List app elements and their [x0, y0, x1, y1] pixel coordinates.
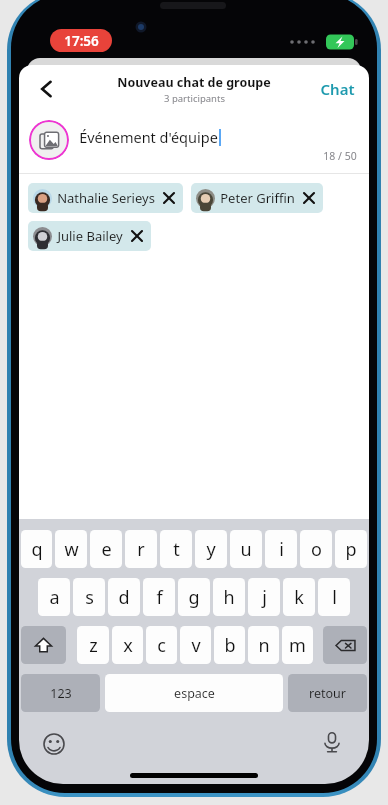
button[interactable]: Emoji: [41, 731, 67, 757]
button[interactable]: m: [282, 626, 313, 664]
staticText: l: [332, 585, 337, 610]
button[interactable]: o: [300, 530, 332, 568]
staticText: f: [156, 585, 163, 610]
staticText: p: [345, 537, 357, 562]
button[interactable]: c: [146, 626, 177, 664]
button[interactable]: v: [180, 626, 211, 664]
button[interactable]: Nathalie Serieys: [28, 183, 183, 213]
button[interactable]: Dictée: [319, 729, 345, 755]
staticText: 18 / 50: [323, 149, 357, 163]
button[interactable]: l: [318, 578, 350, 616]
button[interactable]: n: [248, 626, 279, 664]
staticText: u: [240, 537, 252, 562]
button[interactable]: Julie Bailey: [28, 221, 151, 251]
staticText: 17:56: [64, 32, 99, 50]
staticText: 3 participants: [164, 92, 225, 105]
button[interactable]: Supprimer: [323, 626, 367, 664]
staticText: Chat: [320, 79, 355, 99]
staticText: g: [188, 585, 200, 610]
button[interactable]: p: [335, 530, 367, 568]
staticText: Nouveau chat de groupe: [117, 74, 271, 91]
staticText: q: [31, 537, 43, 562]
staticText: z: [89, 633, 98, 658]
button[interactable]: espace: [105, 674, 283, 712]
staticText: i: [279, 537, 284, 562]
button[interactable]: Chat: [316, 73, 359, 105]
button[interactable]: 123: [21, 674, 100, 712]
staticText: espace: [174, 685, 215, 702]
button[interactable]: a: [38, 578, 70, 616]
button[interactable]: t: [160, 530, 192, 568]
staticText: d: [118, 585, 130, 610]
other: Supprimer Nathalie Serieys: [162, 191, 176, 205]
staticText: Peter Griffin: [220, 189, 295, 207]
button[interactable]: w: [55, 530, 87, 568]
staticText: s: [85, 585, 94, 610]
button[interactable]: Ajouter une photo: [29, 120, 69, 160]
staticText: e: [101, 537, 112, 562]
staticText: h: [223, 585, 235, 610]
other: Supprimer Peter Griffin: [302, 191, 316, 205]
button[interactable]: Majuscule: [21, 626, 66, 664]
button[interactable]: y: [195, 530, 227, 568]
button[interactable]: j: [248, 578, 280, 616]
button[interactable]: retour: [288, 674, 367, 712]
button[interactable]: r: [125, 530, 157, 568]
staticText: n: [258, 633, 270, 658]
button[interactable]: g: [178, 578, 210, 616]
staticText: y: [206, 537, 216, 562]
button[interactable]: s: [73, 578, 105, 616]
button[interactable]: b: [214, 626, 245, 664]
button[interactable]: f: [143, 578, 175, 616]
button[interactable]: Peter Griffin: [191, 183, 323, 213]
other: Supprimer Julie Bailey: [130, 229, 144, 243]
staticText: Événement d'équipe: [79, 127, 218, 147]
staticText: j: [262, 585, 267, 610]
staticText: k: [294, 585, 304, 610]
button[interactable]: k: [283, 578, 315, 616]
button[interactable]: e: [90, 530, 122, 568]
button[interactable]: q: [21, 530, 52, 568]
staticText: r: [137, 537, 145, 562]
button[interactable]: h: [213, 578, 245, 616]
button[interactable]: x: [112, 626, 143, 664]
staticText: v: [191, 633, 201, 658]
staticText: o: [311, 537, 322, 562]
button[interactable]: i: [265, 530, 297, 568]
staticText: t: [173, 537, 180, 562]
staticText: Julie Bailey: [57, 227, 123, 245]
staticText: Nathalie Serieys: [57, 189, 155, 207]
staticText: a: [49, 585, 60, 610]
button[interactable]: d: [108, 578, 140, 616]
staticText: c: [157, 633, 166, 658]
button[interactable]: u: [230, 530, 262, 568]
staticText: b: [224, 633, 236, 658]
button[interactable]: z: [77, 626, 109, 664]
staticText: x: [123, 633, 133, 658]
button[interactable]: Retour: [27, 69, 67, 109]
staticText: m: [289, 633, 306, 658]
staticText: w: [64, 537, 79, 562]
staticText: retour: [309, 685, 346, 702]
staticText: 123: [50, 685, 72, 702]
